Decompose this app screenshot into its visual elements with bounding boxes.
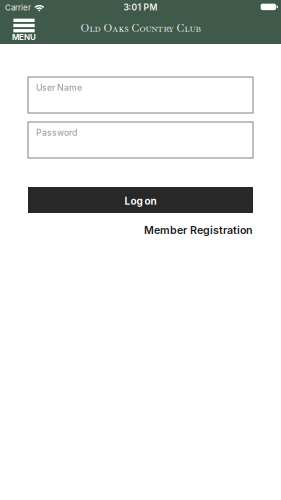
- staticText: Log on: [124, 195, 156, 207]
- button[interactable]: User Name: [28, 77, 253, 113]
- button[interactable]: Log on: [28, 187, 253, 213]
- staticText: Old Oaks Country Club: [80, 21, 200, 35]
- button[interactable]: Menu: [9, 17, 39, 42]
- staticText: Carrier: [5, 3, 31, 12]
- button[interactable]: Member Registration: [144, 224, 253, 236]
- staticText: User Name: [36, 82, 82, 93]
- staticText: Password: [36, 127, 77, 138]
- button[interactable]: Password: [28, 122, 253, 158]
- staticText: MENU: [12, 32, 36, 42]
- staticText: Member Registration: [144, 223, 253, 236]
- staticText: 3:01 PM: [123, 2, 157, 13]
